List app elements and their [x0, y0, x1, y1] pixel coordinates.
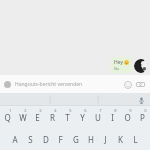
- button[interactable]: Your avatar: [0, 75, 150, 93]
- staticText: 9: [129, 108, 132, 113]
- button[interactable]: Q: [0, 106, 15, 128]
- staticText: H: [88, 134, 94, 145]
- staticText: 0: [144, 108, 147, 113]
- staticText: J: [104, 134, 107, 145]
- staticText: G: [73, 134, 79, 145]
- staticText: F: [58, 134, 63, 145]
- staticText: U: [95, 112, 101, 123]
- staticText: Nu: [114, 66, 119, 71]
- other: Your avatar: [4, 81, 11, 88]
- button[interactable]: L: [128, 128, 143, 150]
- button[interactable]: Hey: [111, 57, 132, 73]
- button[interactable]: O: [120, 106, 135, 128]
- button[interactable]: K: [113, 128, 128, 150]
- staticText: 2: [24, 108, 27, 113]
- button[interactable]: Y: [75, 106, 90, 128]
- button[interactable]: H: [83, 128, 98, 150]
- staticText: E: [35, 112, 40, 123]
- staticText: Q: [4, 112, 11, 123]
- staticText: Hangouts-bericht verzenden: [15, 81, 120, 88]
- staticText: L: [133, 134, 138, 145]
- staticText: A: [12, 134, 18, 145]
- staticText: Hey: [114, 59, 123, 66]
- staticText: 8: [114, 108, 117, 113]
- staticText: T: [65, 112, 70, 123]
- staticText: K: [118, 134, 123, 145]
- staticText: O: [124, 112, 131, 123]
- staticText: 4: [54, 108, 57, 113]
- staticText: 6: [84, 108, 87, 113]
- button[interactable]: G: [68, 128, 83, 150]
- staticText: 1: [9, 108, 12, 113]
- button[interactable]: I: [105, 106, 120, 128]
- button[interactable]: W: [15, 106, 30, 128]
- staticText: 7: [99, 108, 102, 113]
- button[interactable]: Insert emoji: [122, 79, 133, 90]
- button[interactable]: J: [98, 128, 113, 150]
- button[interactable]: F: [53, 128, 68, 150]
- button[interactable]: Contact avatar: [134, 59, 148, 73]
- button[interactable]: E: [30, 106, 45, 128]
- button[interactable]: U: [90, 106, 105, 128]
- staticText: D: [43, 134, 49, 145]
- staticText: I: [111, 112, 114, 123]
- button[interactable]: R: [45, 106, 60, 128]
- staticText: R: [50, 112, 55, 123]
- button[interactable]: D: [38, 128, 53, 150]
- staticText: Y: [80, 112, 85, 123]
- button[interactable]: S: [23, 128, 38, 150]
- staticText: 5: [69, 108, 72, 113]
- staticText: S: [28, 134, 33, 145]
- button[interactable]: Voice input: [136, 95, 146, 105]
- button[interactable]: Attach photo: [135, 79, 146, 90]
- button[interactable]: A: [7, 128, 23, 150]
- button[interactable]: T: [60, 106, 75, 128]
- staticText: P: [140, 112, 145, 123]
- staticText: W: [19, 112, 27, 123]
- button[interactable]: P: [135, 106, 150, 128]
- staticText: 3: [39, 108, 42, 113]
